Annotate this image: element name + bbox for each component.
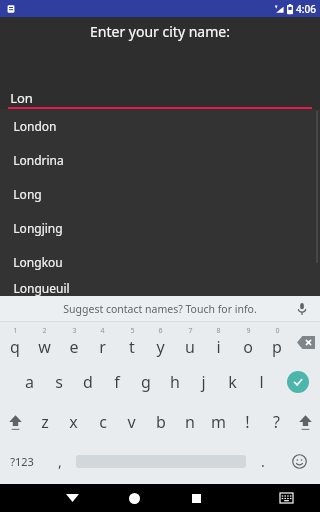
staticText: m [211, 411, 226, 433]
staticText: g [141, 371, 151, 393]
staticText: a [25, 371, 34, 393]
staticText: ! [245, 411, 250, 433]
staticText: x [69, 411, 78, 433]
button[interactable]: n [175, 402, 204, 442]
staticText: 4 [100, 326, 105, 336]
button[interactable]: Shift [291, 402, 320, 442]
staticText: r [99, 336, 106, 358]
button[interactable]: m [204, 402, 233, 442]
button[interactable]: 7 [175, 322, 204, 362]
staticText: b [156, 411, 166, 433]
button[interactable]: z [30, 402, 59, 442]
button[interactable]: Longueuil [0, 279, 320, 296]
staticText: t [129, 336, 135, 358]
button[interactable]: s [44, 362, 73, 402]
staticText: c [99, 411, 107, 433]
button[interactable]: c [88, 402, 117, 442]
button[interactable]: Shift [0, 402, 30, 442]
staticText: ? [273, 411, 280, 433]
staticText: f [114, 371, 120, 393]
staticText: 0 [275, 326, 280, 336]
staticText: s [55, 371, 63, 393]
staticText: n [185, 411, 195, 433]
staticText: 4:06 [296, 2, 316, 16]
staticText: Longkou [13, 254, 63, 270]
staticText: Longjing [13, 220, 63, 236]
staticText: q [10, 336, 20, 358]
button[interactable]: Switch keyboard [266, 484, 306, 512]
button[interactable]: k [218, 362, 247, 402]
staticText: 6 [158, 326, 163, 336]
button[interactable]: Backspace [291, 322, 320, 362]
staticText: i [216, 336, 221, 358]
staticText: h [170, 371, 180, 393]
staticText: j [201, 371, 206, 393]
staticText: l [259, 371, 264, 393]
staticText: 2 [42, 326, 47, 336]
staticText: London [13, 118, 57, 134]
staticText: v [127, 411, 136, 433]
button[interactable]: ? [262, 402, 291, 442]
button[interactable]: j [189, 362, 218, 402]
staticText: 9 [246, 326, 251, 336]
button[interactable]: ?123 [0, 442, 43, 480]
staticText: Enter your city name: [90, 22, 230, 41]
button[interactable]: Voice input [293, 300, 311, 318]
button[interactable]: d [73, 362, 102, 402]
button[interactable]: Enter [276, 362, 320, 402]
button[interactable]: ! [233, 402, 262, 442]
button[interactable]: Londrina [0, 143, 320, 177]
button[interactable]: Back [52, 484, 92, 512]
button[interactable]: 5 [117, 322, 146, 362]
button[interactable]: 2 [30, 322, 59, 362]
staticText: w [38, 336, 51, 358]
staticText: ?123 [10, 454, 34, 469]
staticText: Longueuil [13, 280, 70, 296]
staticText: u [185, 336, 195, 358]
button[interactable]: . [246, 442, 279, 480]
staticText: o [243, 336, 253, 358]
button[interactable]: f [102, 362, 131, 402]
button[interactable]: Space [76, 442, 246, 480]
button[interactable]: 1 [0, 322, 30, 362]
button[interactable]: Emoji [279, 442, 320, 480]
button[interactable]: London [0, 109, 320, 143]
staticText: y [156, 336, 165, 358]
button[interactable]: Longkou [0, 245, 320, 279]
button[interactable]: v [117, 402, 146, 442]
staticText: d [83, 371, 93, 393]
button[interactable]: Lon [0, 88, 320, 109]
button[interactable]: Suggest contact names? Touch for info. [0, 296, 320, 321]
button[interactable]: Long [0, 177, 320, 211]
button[interactable]: Longjing [0, 211, 320, 245]
button[interactable]: Home [114, 484, 154, 512]
staticText: p [272, 336, 282, 358]
button[interactable]: x [59, 402, 88, 442]
staticText: 5 [130, 326, 135, 336]
button[interactable]: 0 [262, 322, 291, 362]
staticText: 7 [188, 326, 193, 336]
staticText: Suggest contact names? Touch for info. [63, 302, 257, 316]
button[interactable]: 9 [233, 322, 262, 362]
button[interactable]: l [247, 362, 276, 402]
staticText: 8 [216, 326, 221, 336]
button[interactable]: 8 [204, 322, 233, 362]
staticText: , [58, 452, 62, 471]
button[interactable]: g [131, 362, 160, 402]
staticText: k [228, 371, 237, 393]
button[interactable]: 6 [146, 322, 175, 362]
button[interactable]: Recent apps [176, 484, 216, 512]
staticText: z [41, 411, 49, 433]
staticText: Long [13, 186, 42, 202]
staticText: Londrina [13, 152, 64, 168]
button[interactable]: b [146, 402, 175, 442]
button[interactable]: 3 [59, 322, 88, 362]
button[interactable]: h [160, 362, 189, 402]
button[interactable]: , [43, 442, 76, 480]
button[interactable]: a [15, 362, 44, 402]
button[interactable]: 4 [88, 322, 117, 362]
staticText: Lon [10, 89, 33, 107]
staticText: 1 [13, 326, 18, 336]
staticText: e [69, 336, 79, 358]
staticText: . [261, 452, 265, 471]
